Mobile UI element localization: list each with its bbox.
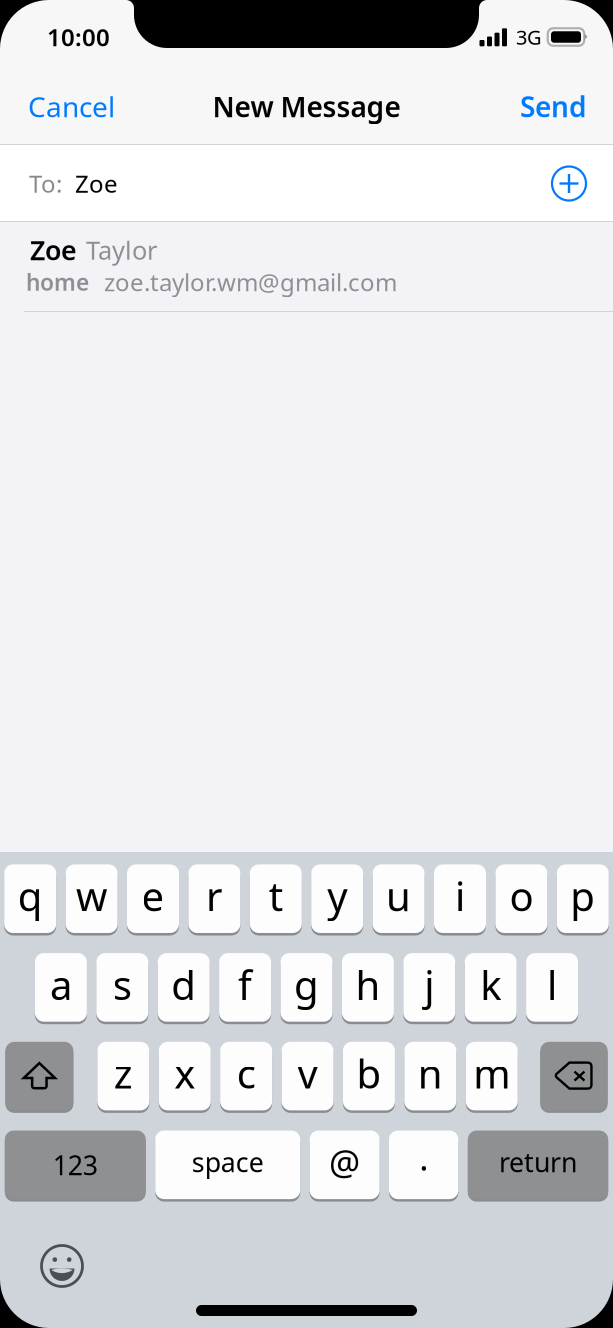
staticText: e	[141, 869, 164, 922]
staticText: j	[424, 958, 434, 1011]
button[interactable]: v	[282, 1042, 334, 1110]
button[interactable]: Shift	[5, 1042, 73, 1110]
button[interactable]: a	[35, 953, 87, 1022]
staticText: Taylor	[86, 233, 157, 267]
staticText: Cancel	[28, 88, 115, 125]
staticText: h	[355, 958, 380, 1011]
button[interactable]: b	[343, 1042, 395, 1110]
button[interactable]: w	[66, 864, 118, 933]
staticText: @	[329, 1139, 360, 1185]
button[interactable]: .	[389, 1130, 458, 1199]
button[interactable]: Emoji	[33, 1237, 91, 1295]
button[interactable]: u	[373, 864, 425, 933]
button[interactable]: r	[188, 864, 240, 933]
staticText: u	[386, 869, 411, 922]
staticText: To:	[29, 168, 62, 199]
staticText: p	[570, 869, 595, 922]
staticText: a	[50, 958, 72, 1011]
staticText: r	[206, 869, 223, 922]
button[interactable]: y	[311, 864, 363, 933]
staticText: Zoe	[30, 232, 77, 268]
button[interactable]: c	[220, 1042, 272, 1110]
button[interactable]: n	[404, 1042, 456, 1110]
button[interactable]: p	[557, 864, 609, 933]
staticText: m	[473, 1046, 510, 1100]
staticText: g	[294, 958, 319, 1011]
button[interactable]: Add Contact	[552, 166, 586, 200]
staticText: f	[238, 958, 252, 1011]
staticText: q	[18, 869, 43, 922]
staticText: n	[418, 1046, 443, 1100]
button[interactable]: return	[468, 1130, 608, 1199]
button[interactable]: @	[310, 1130, 380, 1199]
button[interactable]: 123	[5, 1130, 146, 1199]
staticText: i	[455, 869, 465, 922]
staticText: Zoe	[75, 168, 118, 199]
button[interactable]: q	[4, 864, 56, 933]
staticText: w	[76, 869, 107, 922]
staticText: New Message	[212, 88, 400, 125]
button[interactable]: Send	[494, 73, 613, 139]
staticText: c	[237, 1046, 256, 1100]
button[interactable]: o	[495, 864, 547, 933]
button[interactable]: e	[127, 864, 179, 933]
staticText: 123	[53, 1147, 98, 1182]
button[interactable]: Delete	[540, 1042, 608, 1110]
button[interactable]: s	[96, 953, 148, 1022]
staticText: home	[26, 267, 89, 297]
staticText: o	[509, 869, 533, 922]
staticText: y	[327, 869, 347, 922]
button[interactable]: k	[465, 953, 517, 1022]
button[interactable]: i	[434, 864, 486, 933]
staticText: zoe.taylor.wm@gmail.com	[104, 266, 397, 298]
staticText: b	[356, 1046, 381, 1100]
staticText: k	[480, 958, 501, 1011]
staticText: Send	[520, 88, 587, 125]
button[interactable]: g	[280, 953, 332, 1022]
button[interactable]: t	[250, 864, 302, 933]
button[interactable]: d	[158, 953, 210, 1022]
button[interactable]: x	[159, 1042, 211, 1110]
staticText: x	[174, 1046, 195, 1100]
staticText: return	[499, 1144, 577, 1179]
staticText: t	[269, 869, 283, 922]
button[interactable]: Zoe	[0, 222, 613, 311]
staticText: d	[171, 958, 196, 1011]
button[interactable]: j	[403, 953, 455, 1022]
button[interactable]: z	[97, 1042, 149, 1110]
staticText: space	[192, 1144, 264, 1179]
staticText: z	[114, 1046, 133, 1100]
button[interactable]: space	[155, 1130, 300, 1199]
staticText: 3G	[516, 24, 542, 50]
staticText: .	[419, 1134, 428, 1180]
staticText: v	[298, 1046, 318, 1100]
staticText: l	[547, 958, 557, 1011]
staticText: 10:00	[47, 21, 110, 53]
button[interactable]: m	[466, 1042, 518, 1110]
button[interactable]: l	[526, 953, 578, 1022]
button[interactable]: f	[219, 953, 271, 1022]
button[interactable]: Cancel	[0, 73, 143, 139]
staticText: s	[113, 958, 132, 1011]
button[interactable]: h	[342, 953, 394, 1022]
